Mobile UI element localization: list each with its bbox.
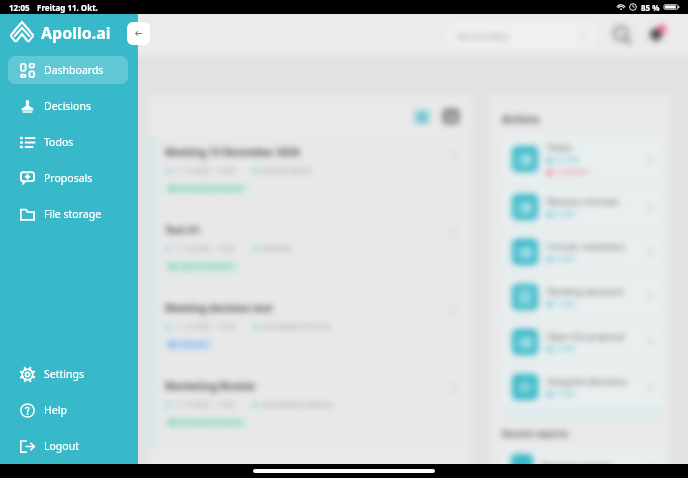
staticText: 85 % — [641, 2, 660, 13]
staticText: Proposals — [44, 171, 93, 185]
button[interactable]: Logout — [8, 432, 128, 460]
staticText: Freitag 11. Okt. — [37, 2, 98, 13]
staticText: 11.12.2024 13:30 — [175, 244, 235, 254]
button[interactable]: Meeting decision test — [148, 293, 472, 371]
staticText: 2 new — [555, 209, 575, 219]
staticText: Circular resolution — [547, 240, 625, 252]
staticText: Actions — [502, 112, 540, 126]
staticText: Meeting 13 December 2024 — [165, 145, 300, 159]
staticText: Help — [44, 403, 67, 417]
button[interactable]: Dashboards — [8, 56, 128, 84]
staticText: 11.12.2024 13:30 — [175, 322, 235, 332]
button[interactable]: File storage — [8, 200, 128, 228]
staticText: Revision minutes — [547, 195, 619, 207]
staticText: Standard — [262, 244, 292, 254]
staticText: 11.12.2024 13:30 — [175, 400, 235, 410]
staticText: Dashboards — [44, 63, 104, 77]
staticText: 3 new — [555, 344, 575, 354]
button[interactable]: Help — [8, 396, 128, 424]
staticText: Assigned decisions — [547, 375, 627, 387]
staticText: 1 new — [555, 299, 575, 309]
button[interactable]: Todos — [8, 128, 128, 156]
staticText: Decision Board — [262, 166, 312, 176]
button[interactable]: Notifications — [646, 25, 666, 45]
staticText: 2 overdue — [555, 167, 588, 177]
staticText: 3 — [661, 26, 664, 33]
staticText: File storage — [44, 207, 102, 221]
button[interactable]: Meeting 13 December 2024 — [148, 137, 472, 215]
staticText: Logout — [44, 439, 79, 453]
staticText: Decision reports — [542, 459, 612, 471]
staticText: > — [649, 459, 655, 471]
staticText: 2 new — [555, 254, 575, 264]
button[interactable]: Decisions — [8, 92, 128, 120]
staticText: Todos — [547, 141, 573, 153]
staticText: 12:05 — [9, 2, 30, 13]
staticText: Recording Finished — [179, 418, 242, 428]
button[interactable]: Settings — [8, 360, 128, 388]
staticText: 12 new — [555, 155, 579, 165]
staticText: Apollo.ai — [41, 22, 111, 44]
staticText: Test #1 — [165, 223, 201, 237]
staticText: Pending decisions — [547, 285, 624, 297]
staticText: Meeting decision test — [165, 301, 273, 315]
staticText: 1 new — [555, 389, 575, 399]
button[interactable]: Search — [612, 25, 632, 45]
button[interactable]: Back — [127, 22, 150, 45]
button[interactable]: Marketing Review — [148, 371, 472, 449]
staticText: Marketing Review — [165, 379, 256, 393]
staticText: Finished — [179, 340, 207, 350]
staticText: Todos — [44, 135, 74, 149]
staticText: Record filter — [458, 30, 510, 42]
staticText: Settings — [44, 367, 84, 381]
staticText: Decisions — [44, 99, 91, 113]
staticText: Recording Finished — [179, 184, 242, 194]
staticText: Remediation Process — [262, 322, 331, 332]
staticText: Remediation Meeting — [262, 400, 333, 410]
staticText: 11.12.2024 13:30 — [175, 166, 235, 176]
button[interactable]: Record filter — [446, 22, 598, 49]
staticText: Open list proposal — [547, 330, 625, 342]
staticText: Speech Finished — [179, 262, 233, 272]
button[interactable]: Grid view — [443, 109, 459, 124]
button[interactable]: Test #1 — [148, 215, 472, 293]
staticText: Recent reports — [502, 427, 569, 439]
button[interactable]: Proposals — [8, 164, 128, 192]
button[interactable]: List view — [414, 109, 430, 124]
